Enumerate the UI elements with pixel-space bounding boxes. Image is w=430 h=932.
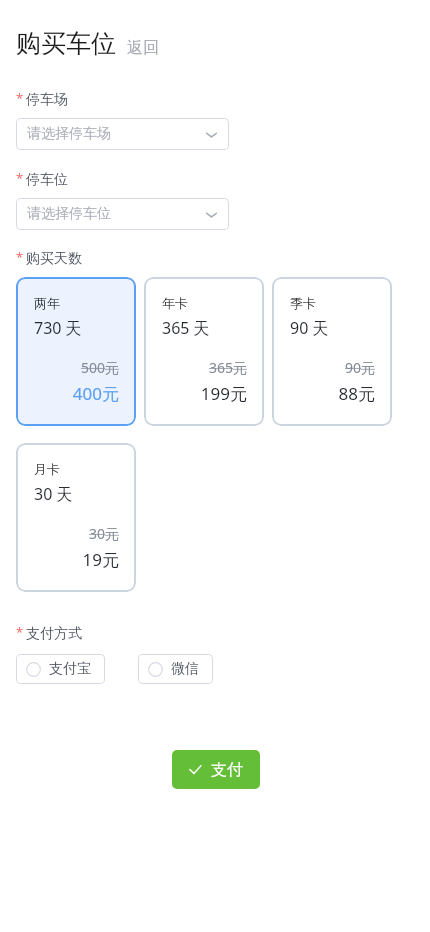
staticText: 购买天数 [26, 250, 82, 267]
staticText: 购买车位 [16, 28, 116, 59]
staticText: 年卡 [162, 295, 188, 311]
button[interactable]: 月卡 [16, 443, 136, 592]
staticText: 365元 [162, 358, 247, 377]
staticText: 90 天 [290, 317, 329, 339]
staticText: * [16, 89, 24, 106]
staticText: 微信 [171, 660, 199, 678]
button[interactable]: 支付 [172, 750, 260, 789]
staticText: 停车位 [26, 171, 68, 188]
button[interactable]: 支付宝 [16, 654, 105, 684]
staticText: 支付宝 [49, 660, 91, 678]
button[interactable]: 请选择停车场 [16, 118, 229, 150]
button[interactable]: 年卡 [144, 277, 264, 426]
staticText: 365 天 [162, 317, 210, 339]
staticText: 30 天 [34, 483, 73, 505]
button[interactable]: 微信 [138, 654, 213, 684]
button[interactable]: 返回 [127, 38, 159, 59]
staticText: 730 天 [34, 317, 82, 339]
staticText: 两年 [34, 295, 60, 311]
button[interactable]: 季卡 [272, 277, 392, 426]
staticText: * [16, 248, 24, 265]
staticText: 88元 [290, 382, 375, 405]
button[interactable]: 请选择停车位 [16, 198, 229, 230]
staticText: 90元 [290, 358, 375, 377]
staticText: 199元 [162, 382, 247, 405]
staticText: 请选择停车场 [27, 125, 111, 143]
staticText: 请选择停车位 [27, 205, 111, 223]
staticText: 返回 [127, 38, 159, 58]
staticText: * [16, 623, 24, 640]
staticText: 500元 [34, 358, 119, 377]
staticText: 季卡 [290, 295, 316, 311]
button[interactable]: 两年 [16, 277, 136, 426]
staticText: 支付方式 [26, 625, 82, 642]
staticText: 支付 [211, 760, 243, 780]
staticText: 400元 [34, 382, 119, 405]
staticText: 30元 [34, 524, 119, 543]
staticText: * [16, 169, 24, 186]
staticText: 停车场 [26, 91, 68, 108]
staticText: 月卡 [34, 461, 60, 477]
staticText: 19元 [34, 548, 119, 571]
